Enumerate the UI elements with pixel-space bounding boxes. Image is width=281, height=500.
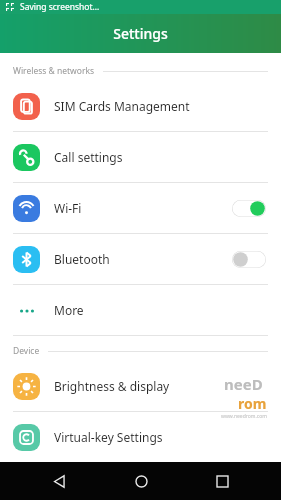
button[interactable]: Toggle off — [232, 251, 266, 268]
staticText: Device — [13, 345, 40, 357]
staticText: SIM Cards Management — [54, 98, 190, 114]
staticText: Wi-Fi — [54, 200, 82, 216]
staticText: Call settings — [54, 149, 123, 165]
button[interactable]: Toggle on — [232, 200, 266, 217]
staticText: Virtual-key Settings — [54, 429, 163, 445]
staticText: www.needrom.com — [221, 413, 267, 420]
button[interactable]: Virtual-key Settings — [0, 412, 281, 462]
button[interactable]: Home — [119, 462, 163, 500]
button[interactable]: More — [0, 285, 281, 335]
staticText: Bluetooth — [54, 251, 110, 267]
staticText: Wireless & networks — [13, 65, 95, 77]
button[interactable]: Back — [37, 462, 81, 500]
staticText: Saving screenshot… — [20, 1, 100, 13]
staticText: Brightness & display — [54, 378, 170, 394]
staticText: rom — [238, 394, 267, 413]
staticText: More — [54, 302, 84, 318]
button[interactable]: Call settings — [0, 132, 281, 182]
button[interactable]: Wi-Fi — [0, 183, 281, 233]
button[interactable]: Bluetooth — [0, 234, 281, 284]
staticText: neeD — [224, 374, 263, 394]
button[interactable]: Recent apps — [200, 462, 244, 500]
button[interactable]: SIM Cards Management — [0, 81, 281, 131]
staticText: Settings — [113, 24, 168, 43]
button[interactable]: Brightness & display — [0, 361, 281, 411]
